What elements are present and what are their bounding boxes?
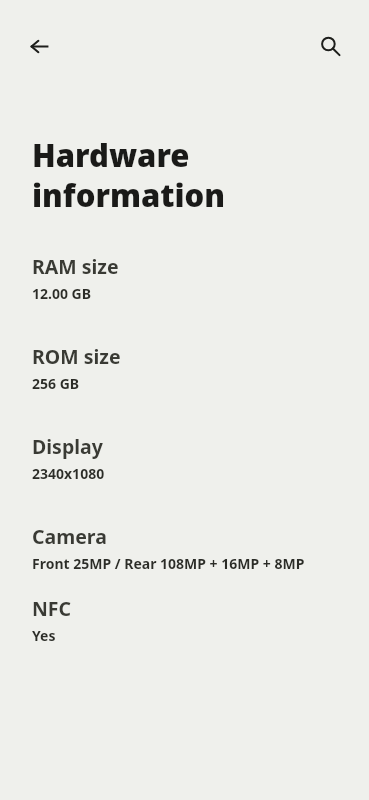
staticText: ROM size xyxy=(32,343,121,370)
staticText: Front 25MP / Rear 108MP + 16MP + 8MP xyxy=(32,554,305,573)
staticText: Camera xyxy=(32,523,107,550)
staticText: 12.00 GB xyxy=(32,284,92,303)
staticText: NFC xyxy=(32,595,72,622)
staticText: Yes xyxy=(32,626,56,645)
staticText: 2340x1080 xyxy=(32,464,105,483)
staticText: Display xyxy=(32,433,103,460)
staticText: RAM size xyxy=(32,253,119,280)
staticText: 256 GB xyxy=(32,374,80,393)
button[interactable]: Back xyxy=(22,29,56,63)
button[interactable]: Search xyxy=(313,29,347,63)
staticText: Hardware information xyxy=(32,134,226,216)
